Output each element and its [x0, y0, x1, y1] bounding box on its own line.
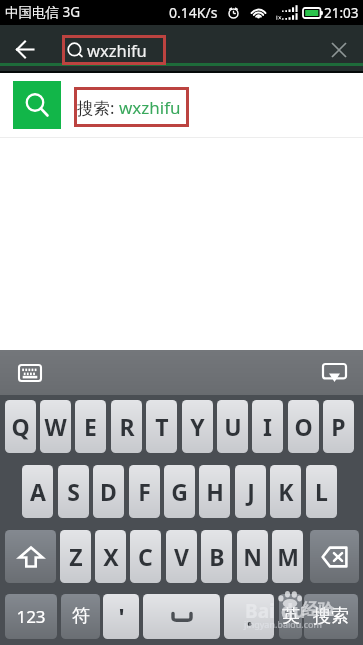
staticText: du	[281, 598, 306, 624]
staticText: L	[315, 476, 328, 507]
button[interactable]: 123	[5, 594, 57, 639]
button[interactable]: '	[103, 594, 139, 639]
button[interactable]: M	[272, 530, 303, 583]
button[interactable]: P	[323, 400, 354, 453]
staticText: R	[119, 411, 135, 442]
staticText: A	[30, 476, 46, 507]
button[interactable]: Back	[8, 33, 41, 66]
staticText: 经验	[302, 600, 334, 620]
button[interactable]: K	[270, 465, 301, 518]
staticText: F	[138, 476, 151, 507]
staticText: 123	[16, 605, 46, 628]
staticText: Z	[69, 541, 83, 572]
staticText: C	[138, 541, 153, 572]
button[interactable]: Backspace	[310, 530, 359, 583]
button[interactable]: Hide keyboard	[318, 357, 350, 389]
button[interactable]: X	[95, 530, 126, 583]
button[interactable]: 搜索:	[0, 73, 363, 138]
staticText: M	[277, 541, 299, 572]
button[interactable]: D	[93, 465, 124, 518]
button[interactable]: U	[217, 400, 248, 453]
staticText: 符	[72, 605, 90, 628]
staticText: wxzhifu	[119, 96, 181, 119]
staticText: .	[246, 601, 253, 632]
staticText: S	[67, 476, 80, 507]
staticText: 0.14K/s	[169, 3, 218, 22]
staticText: I	[263, 411, 272, 442]
button[interactable]: Space	[143, 594, 220, 639]
button[interactable]: O	[288, 400, 319, 453]
button[interactable]: G	[164, 465, 195, 518]
staticText: Y	[190, 411, 205, 442]
staticText: W	[44, 411, 67, 442]
button[interactable]: 符	[61, 594, 100, 639]
staticText: 英	[282, 605, 300, 628]
staticText: E	[84, 411, 97, 442]
staticText: J	[247, 476, 255, 507]
button[interactable]: N	[237, 530, 268, 583]
button[interactable]: 英	[279, 594, 302, 639]
button[interactable]: Shift	[5, 530, 56, 583]
staticText: T	[155, 411, 169, 442]
button[interactable]: V	[166, 530, 197, 583]
staticText: P	[331, 411, 346, 442]
staticText: 搜索	[313, 605, 349, 628]
button[interactable]: W	[40, 400, 71, 453]
staticText: D	[100, 476, 117, 507]
staticText: B	[209, 541, 225, 572]
button[interactable]: wxzhifu	[65, 35, 165, 65]
button[interactable]: .	[224, 594, 274, 639]
staticText: '	[118, 601, 125, 632]
button[interactable]: F	[129, 465, 160, 518]
button[interactable]: S	[58, 465, 89, 518]
button[interactable]: 搜索	[304, 594, 358, 639]
staticText: V	[174, 541, 189, 572]
button[interactable]: Y	[182, 400, 213, 453]
button[interactable]: Z	[60, 530, 91, 583]
button[interactable]: I	[252, 400, 283, 453]
staticText: O	[294, 411, 313, 442]
button[interactable]: H	[199, 465, 230, 518]
staticText: X	[103, 541, 119, 572]
button[interactable]: Switch keyboard	[13, 356, 47, 390]
staticText: K	[278, 476, 294, 507]
staticText: U	[224, 411, 242, 442]
button[interactable]: T	[146, 400, 177, 453]
button[interactable]: A	[22, 465, 53, 518]
button[interactable]: C	[130, 530, 161, 583]
button[interactable]: J	[235, 465, 266, 518]
staticText: N	[243, 541, 262, 572]
button[interactable]: L	[306, 465, 337, 518]
staticText: wxzhifu	[87, 39, 147, 61]
button[interactable]: B	[201, 530, 232, 583]
staticText: Bai	[245, 598, 275, 624]
staticText: Q	[11, 411, 30, 442]
staticText: jingyan.baidu.com	[244, 618, 322, 630]
button[interactable]: R	[111, 400, 142, 453]
staticText: H	[206, 476, 224, 507]
button[interactable]: E	[75, 400, 106, 453]
staticText: 搜索:	[77, 96, 119, 119]
staticText: 中国电信 3G	[5, 3, 81, 21]
staticText: 21:03	[324, 4, 359, 22]
button[interactable]: Q	[5, 400, 36, 453]
button[interactable]: Clear	[324, 35, 354, 65]
staticText: G	[171, 476, 188, 507]
